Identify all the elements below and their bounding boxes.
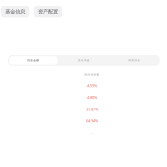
staticText: 64.94% <box>86 118 98 123</box>
staticText: 历史金额 <box>27 59 39 62</box>
button[interactable]: 历史金额 <box>8 55 58 66</box>
staticText: - - <box>90 129 93 135</box>
button[interactable]: 基金信息 <box>1 6 29 17</box>
button[interactable]: 资产配置 <box>34 6 62 17</box>
button[interactable]: 历史净值 <box>58 55 109 66</box>
staticText: 31.47% <box>86 106 98 112</box>
staticText: 同类排名 <box>128 59 140 62</box>
staticText: 历史净值 <box>78 59 90 62</box>
staticText: 阶段涨跌幅 <box>84 73 99 76</box>
button[interactable]: 同类排名 <box>109 55 159 66</box>
staticText: 资产配置 <box>38 8 58 15</box>
staticText: 4.80% <box>87 95 97 100</box>
staticText: 4.59% <box>87 83 97 88</box>
staticText: 基金信息 <box>5 8 25 15</box>
